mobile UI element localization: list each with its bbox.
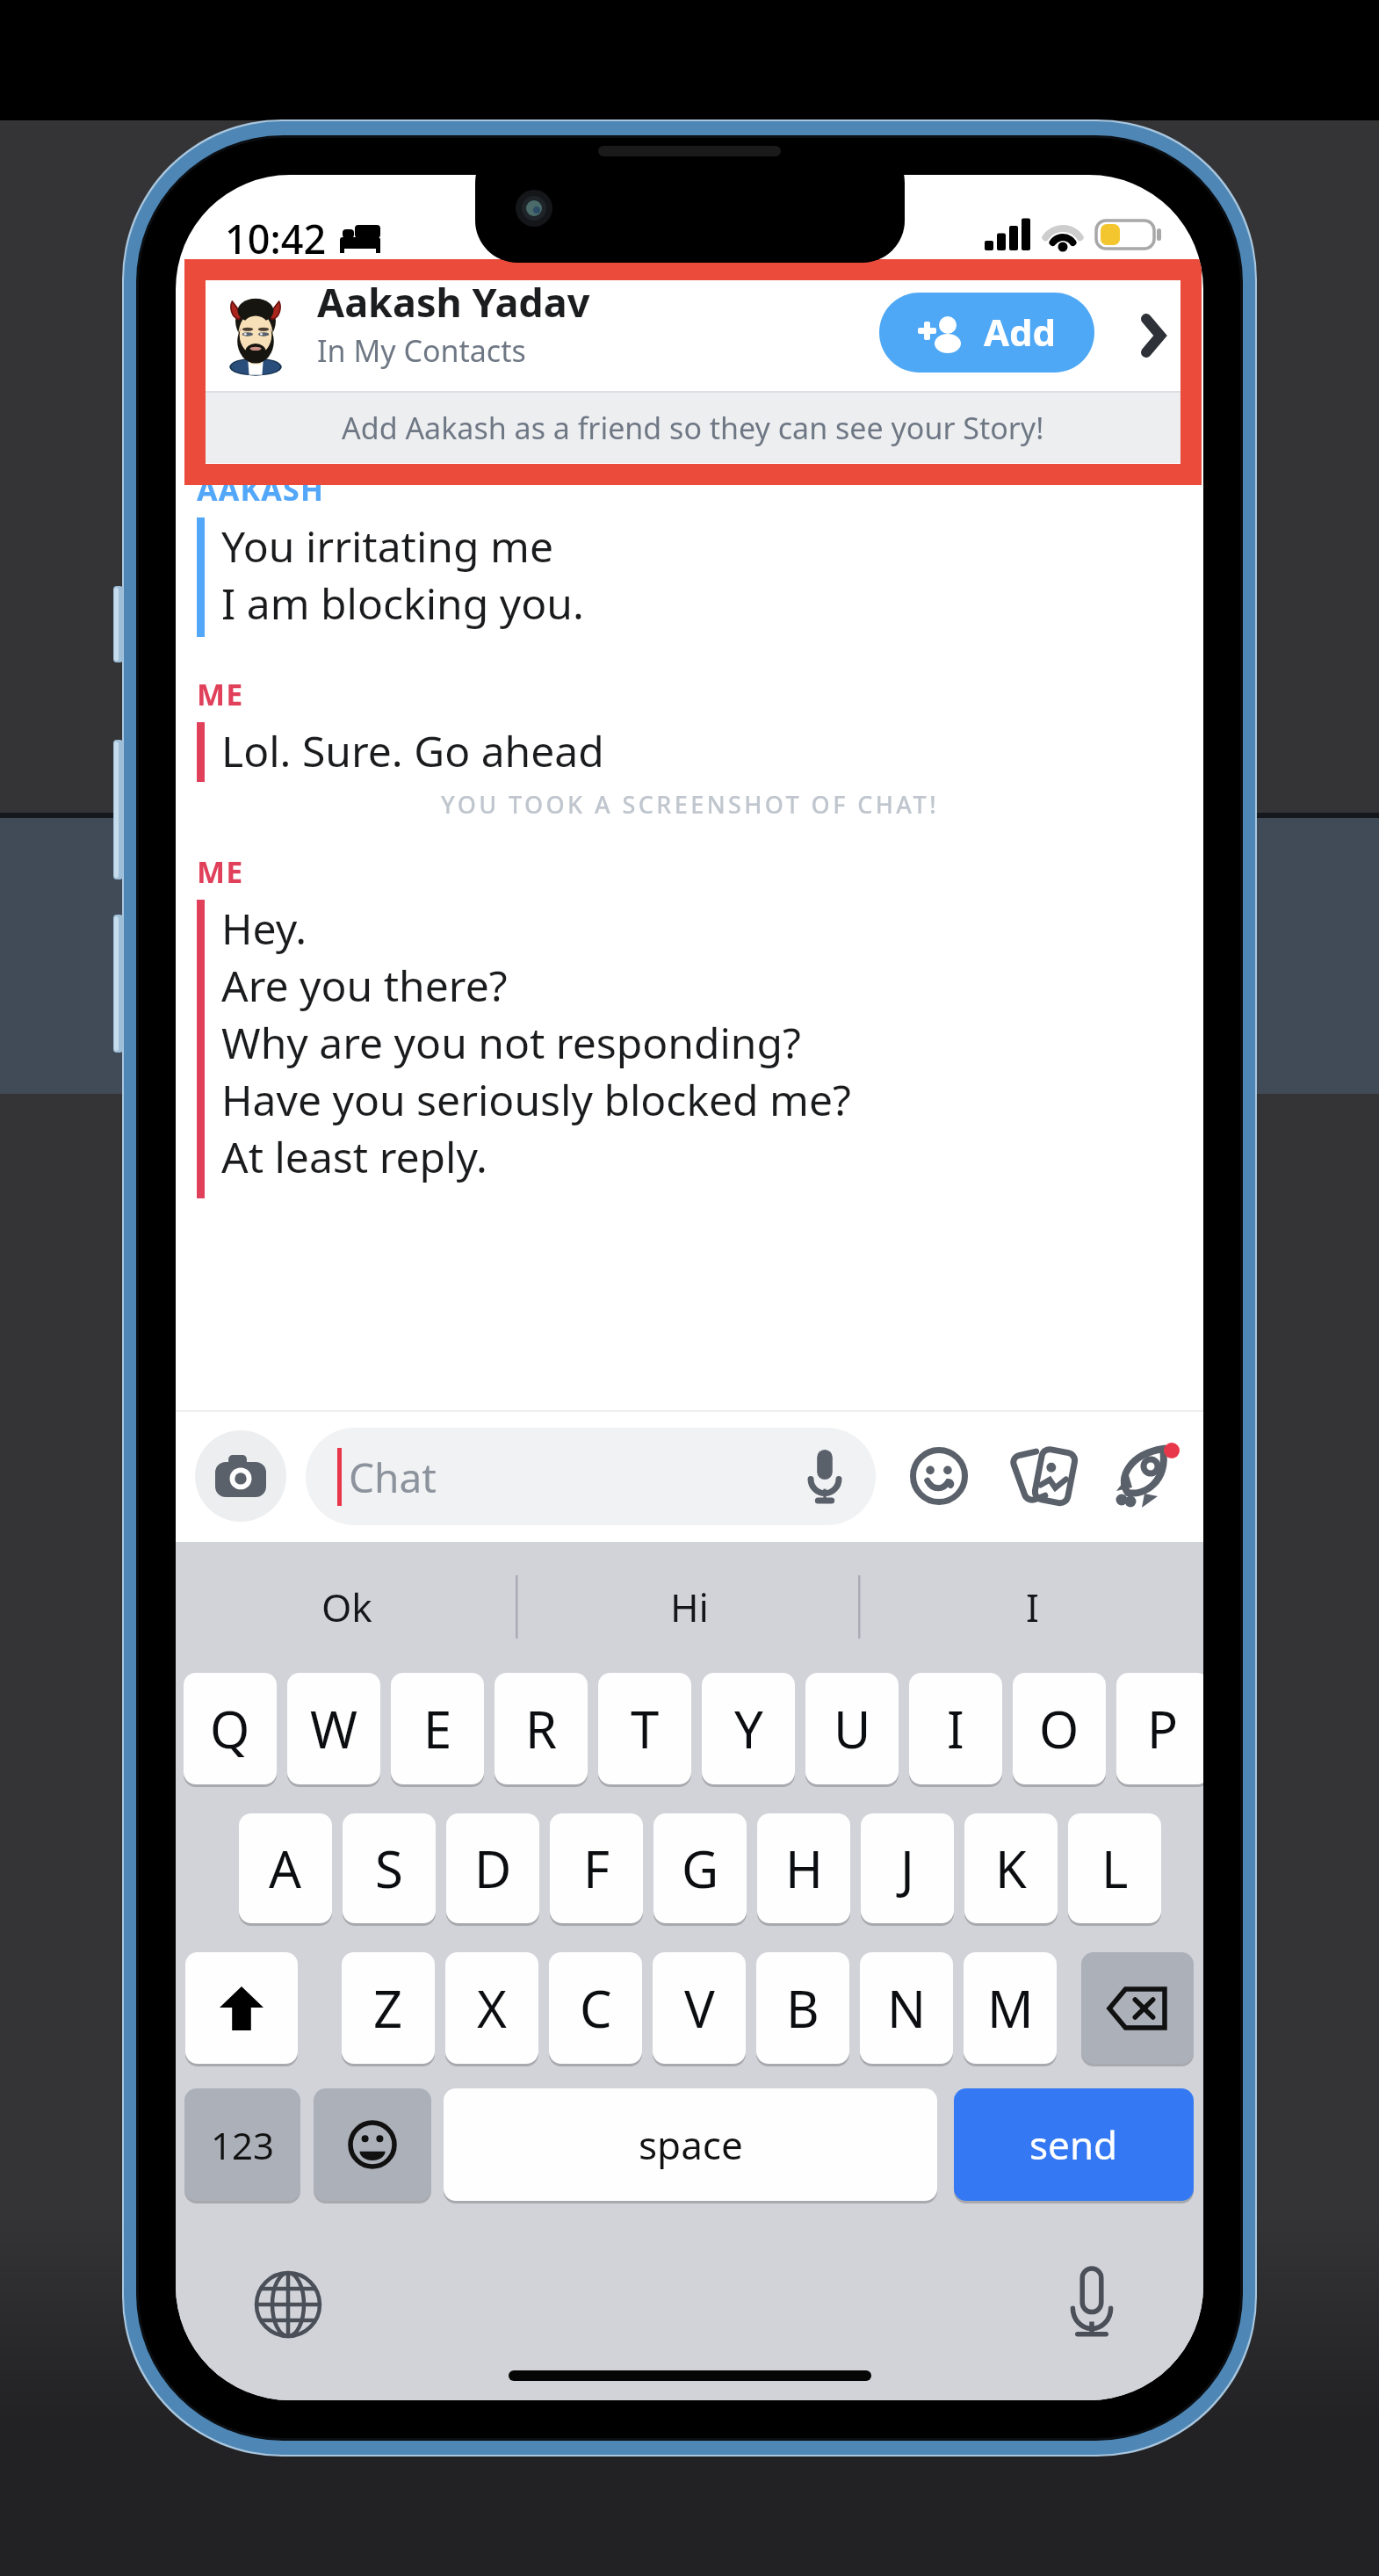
staticText: V [684, 1973, 715, 2043]
button[interactable]: Open profile [1115, 300, 1191, 372]
staticText: I am blocking you. [221, 575, 584, 632]
staticText: M [987, 1973, 1034, 2043]
staticText: Aakash Yadav [317, 275, 590, 329]
staticText: N [887, 1973, 927, 2043]
staticText: K [995, 1834, 1027, 1903]
staticText: ME [197, 851, 244, 892]
staticText: Have you seriously blocked me? [221, 1071, 851, 1128]
button[interactable]: R [495, 1673, 588, 1784]
staticText: R [525, 1694, 558, 1763]
button[interactable]: Change keyboard [249, 2265, 328, 2344]
button[interactable]: M [964, 1952, 1057, 2064]
button[interactable]: Hi [518, 1542, 861, 1672]
button[interactable]: Voice note [791, 1437, 858, 1516]
button[interactable]: Q [184, 1673, 277, 1784]
staticText: Add [984, 307, 1057, 357]
button[interactable]: C [549, 1952, 642, 2064]
staticText: A [269, 1834, 302, 1903]
button[interactable]: Emoji keyboard [314, 2088, 431, 2201]
staticText: Lol. Sure. Go ahead [221, 722, 604, 779]
staticText: Hi [670, 1581, 709, 1633]
staticText: In My Contacts [317, 330, 526, 371]
button[interactable]: F [550, 1813, 643, 1923]
button[interactable]: I [861, 1542, 1203, 1672]
staticText: J [900, 1834, 914, 1903]
staticText: You irritating me [221, 517, 553, 575]
button[interactable]: space [444, 2088, 937, 2201]
staticText: send [1029, 2118, 1118, 2171]
button[interactable]: B [756, 1952, 849, 2064]
staticText: G [682, 1834, 719, 1903]
button[interactable]: Memories [1009, 1442, 1078, 1510]
staticText: YOU TOOK A SCREENSHOT OF CHAT! [441, 788, 939, 821]
staticText: space [639, 2118, 743, 2171]
staticText: Ok [321, 1581, 372, 1633]
staticText: L [1101, 1834, 1129, 1903]
button[interactable]: ME [176, 851, 1203, 1198]
staticText: C [580, 1973, 612, 2043]
button[interactable]: AAKASH [176, 469, 1203, 637]
button[interactable]: X [445, 1952, 538, 2064]
button[interactable]: Stickers [906, 1443, 972, 1509]
button[interactable]: O [1013, 1673, 1106, 1784]
button[interactable]: Y [702, 1673, 795, 1784]
staticText: AAKASH [197, 469, 325, 510]
staticText: B [786, 1973, 819, 2043]
button[interactable]: N [860, 1952, 953, 2064]
button[interactable]: Add [879, 293, 1094, 373]
staticText: X [477, 1973, 507, 2043]
button[interactable]: Chat [306, 1428, 876, 1525]
button[interactable]: U [805, 1673, 899, 1784]
button[interactable]: E [391, 1673, 484, 1784]
button[interactable]: Ok [176, 1542, 518, 1672]
button[interactable]: J [861, 1813, 954, 1923]
button[interactable]: W [287, 1673, 380, 1784]
button[interactable]: Z [342, 1952, 435, 2064]
button[interactable]: Add Aakash as a friend so they can see y… [206, 393, 1180, 463]
button[interactable]: 123 [184, 2088, 300, 2201]
button[interactable]: Shift [185, 1952, 298, 2064]
staticText: E [423, 1694, 452, 1763]
staticText: Chat [349, 1450, 437, 1505]
staticText: At least reply. [221, 1128, 487, 1185]
button[interactable]: Backspace [1081, 1952, 1194, 2064]
staticText: Y [734, 1694, 763, 1763]
button[interactable]: I [909, 1673, 1002, 1784]
staticText: ME [197, 674, 244, 714]
staticText: Q [210, 1694, 250, 1763]
button[interactable]: H [757, 1813, 850, 1923]
staticText: D [474, 1834, 512, 1903]
button[interactable]: Spotlight [1109, 1439, 1183, 1513]
staticText: W [310, 1694, 357, 1763]
staticText: Are you there? [221, 957, 508, 1014]
staticText: F [583, 1834, 610, 1903]
staticText: O [1039, 1694, 1079, 1763]
staticText: 123 [211, 2120, 275, 2170]
button[interactable]: S [343, 1813, 436, 1923]
staticText: U [834, 1694, 871, 1763]
staticText: P [1147, 1694, 1179, 1763]
staticText: I [1026, 1581, 1039, 1633]
button[interactable]: Camera [195, 1430, 286, 1522]
button[interactable]: P [1116, 1673, 1203, 1784]
button[interactable]: ME [176, 674, 1203, 782]
staticText: Z [373, 1973, 403, 2043]
button[interactable]: A [239, 1813, 332, 1923]
button[interactable]: Aakash Yadav [206, 280, 1180, 391]
staticText: 10:42 [225, 212, 327, 265]
button[interactable]: G [653, 1813, 747, 1923]
staticText: T [631, 1694, 660, 1763]
button[interactable]: send [954, 2088, 1194, 2201]
staticText: H [785, 1834, 823, 1903]
button[interactable]: T [598, 1673, 691, 1784]
button[interactable]: K [964, 1813, 1058, 1923]
button[interactable]: L [1068, 1813, 1161, 1923]
staticText: Why are you not responding? [221, 1014, 801, 1071]
button[interactable]: D [446, 1813, 539, 1923]
staticText: Hey. [221, 900, 307, 957]
staticText: S [375, 1834, 403, 1903]
button[interactable]: Dictation [1052, 2262, 1131, 2341]
staticText: Add Aakash as a friend so they can see y… [342, 408, 1044, 448]
button[interactable]: V [653, 1952, 746, 2064]
staticText: I [947, 1694, 964, 1763]
